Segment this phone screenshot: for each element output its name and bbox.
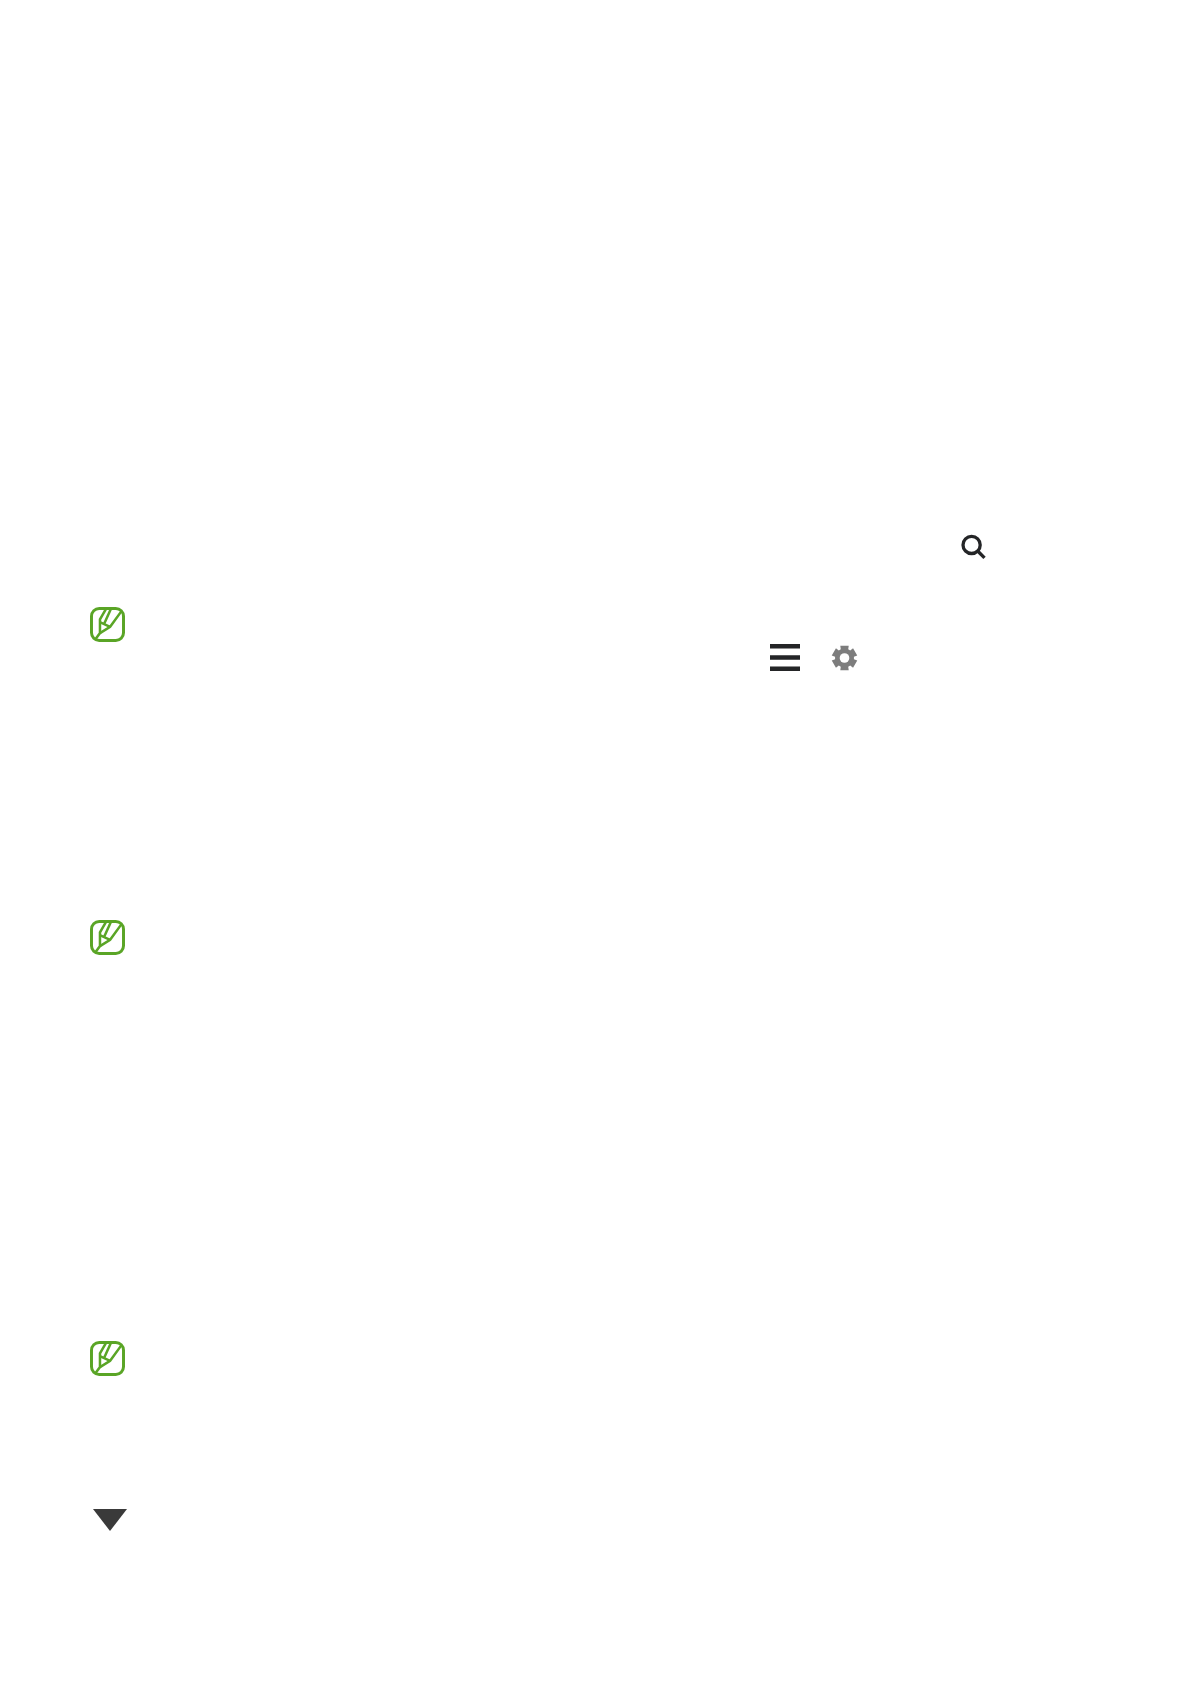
button[interactable]: Settings	[820, 633, 868, 681]
button[interactable]: Note	[83, 1334, 131, 1382]
button[interactable]: List view	[760, 634, 808, 682]
button[interactable]: Search	[950, 524, 994, 568]
button[interactable]: Note	[83, 913, 131, 961]
button[interactable]: Note	[83, 600, 131, 648]
button[interactable]: Expand section	[83, 1499, 137, 1541]
